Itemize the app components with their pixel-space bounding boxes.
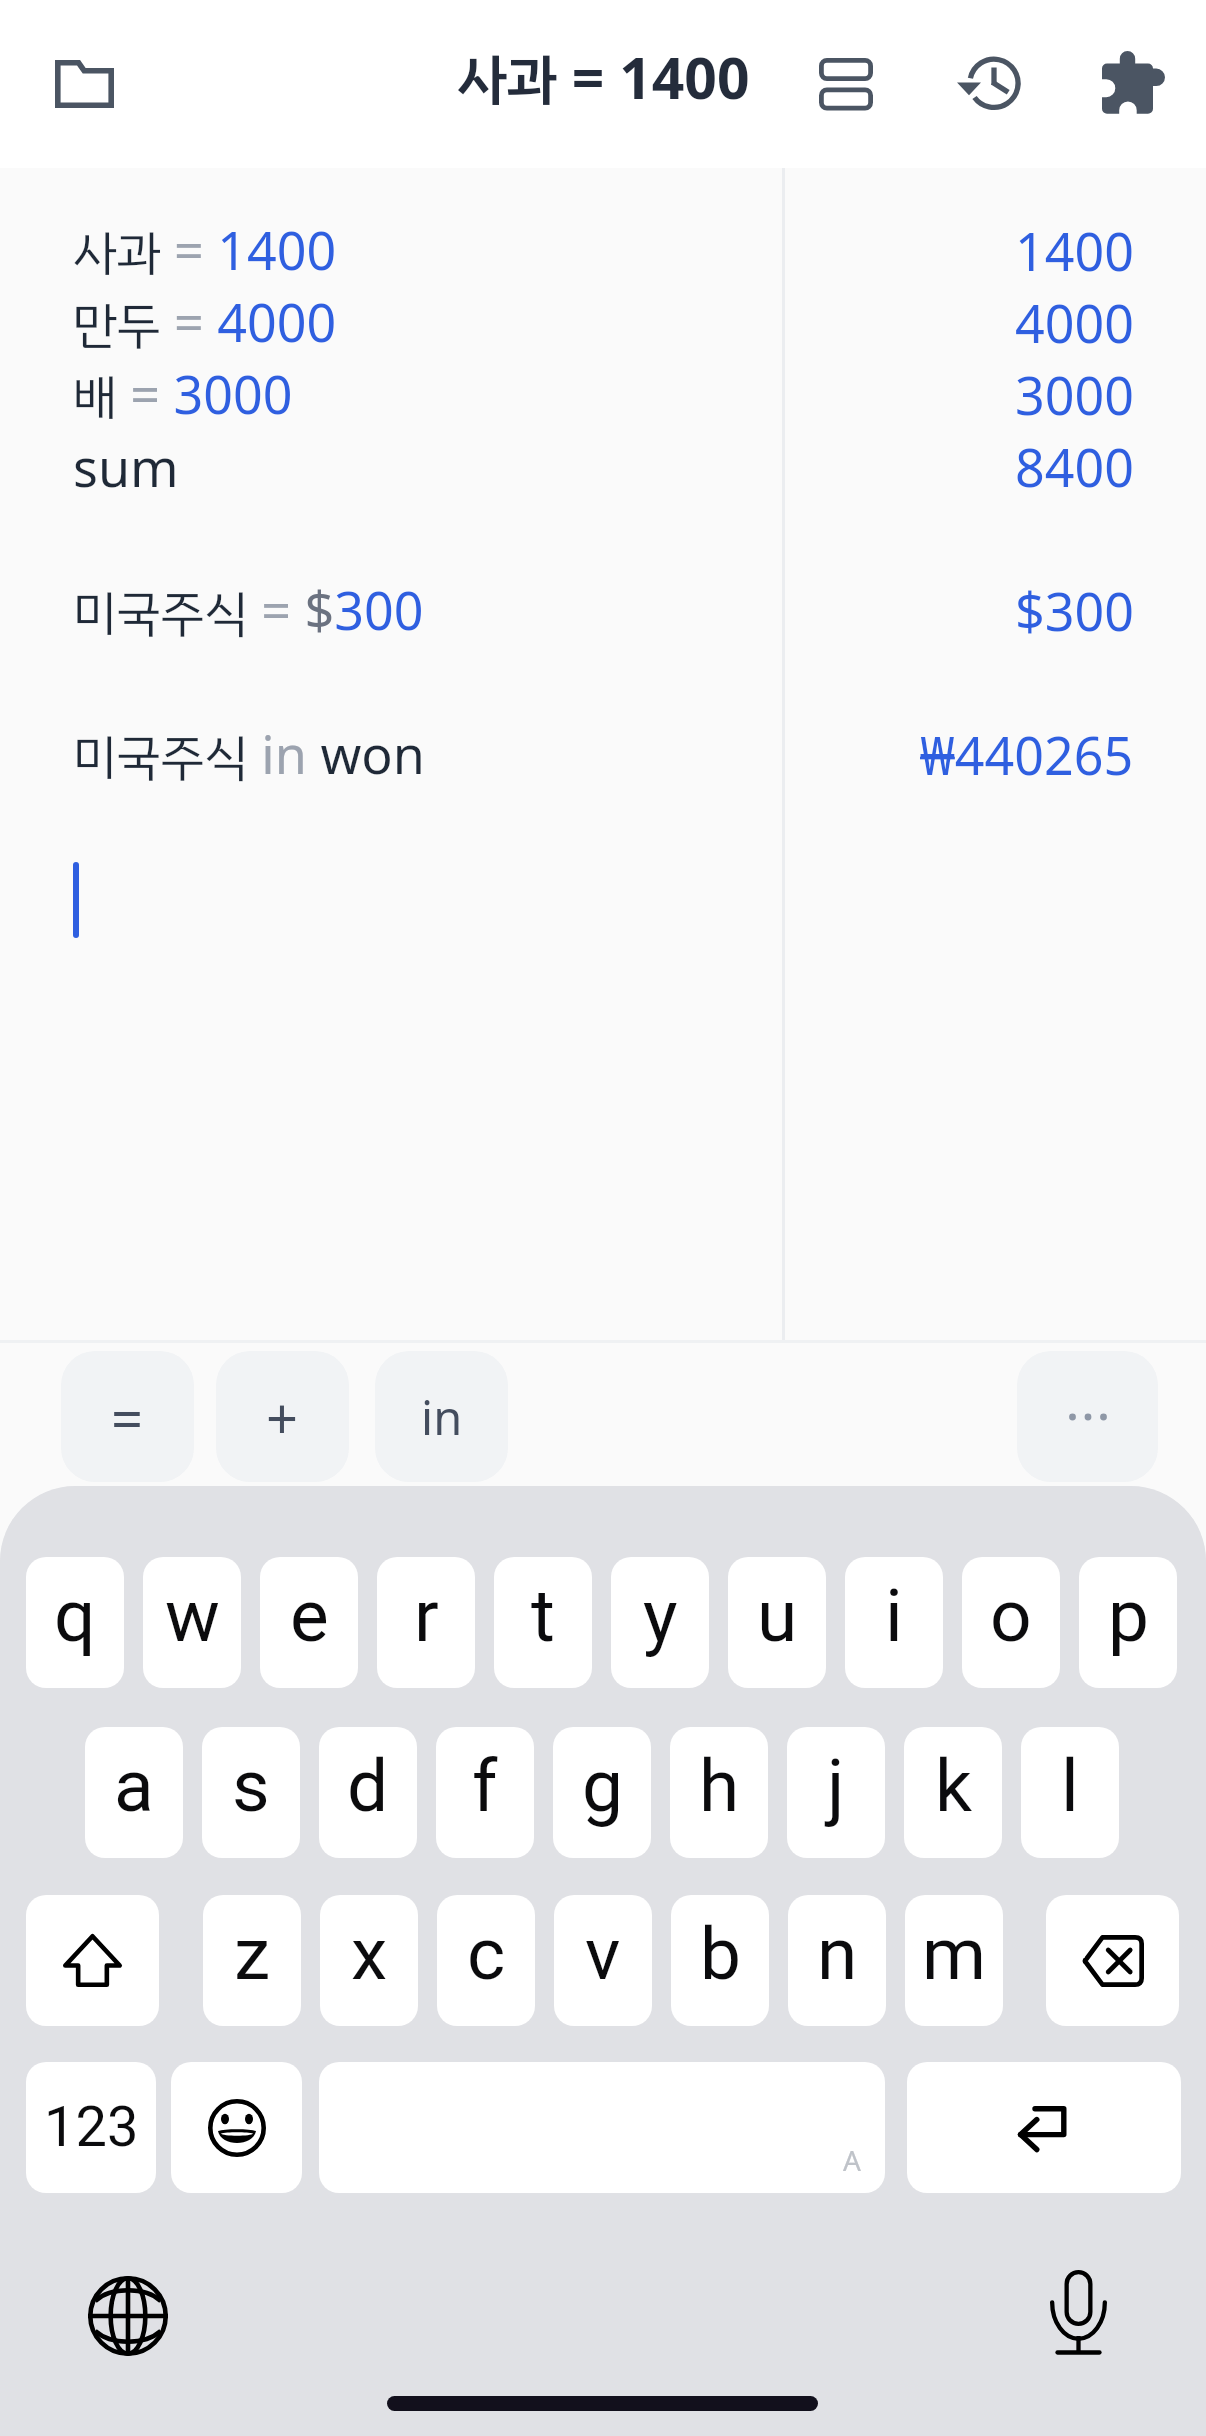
staticText: r xyxy=(414,1573,439,1659)
staticText: y xyxy=(643,1573,678,1659)
button[interactable]: Emoji xyxy=(171,2062,302,2193)
staticText: ₩440265 xyxy=(920,719,1134,790)
staticText: 123 xyxy=(44,2094,139,2160)
button[interactable]: o xyxy=(962,1557,1060,1688)
button[interactable]: = xyxy=(61,1351,194,1482)
staticText: k xyxy=(935,1743,972,1829)
button[interactable]: x xyxy=(320,1895,418,2026)
staticText: 미국주식 = $300 xyxy=(73,574,424,646)
button[interactable]: s xyxy=(202,1727,300,1858)
staticText: w xyxy=(165,1573,220,1659)
staticText: 사과 = 1400 xyxy=(457,38,750,122)
button[interactable]: 123 xyxy=(26,2062,156,2193)
button[interactable]: Extensions xyxy=(1069,18,1197,146)
staticText: 4000 xyxy=(1015,287,1134,358)
staticText: i xyxy=(885,1573,903,1659)
button[interactable] xyxy=(1017,1351,1158,1482)
staticText: sum xyxy=(73,431,179,502)
staticText: a xyxy=(114,1743,154,1829)
staticText: x xyxy=(351,1911,388,1997)
button[interactable]: p xyxy=(1079,1557,1177,1688)
button[interactable]: g xyxy=(553,1727,651,1858)
button[interactable]: Voice input xyxy=(1050,2270,1107,2356)
button[interactable]: Shift xyxy=(26,1895,159,2026)
button[interactable]: Folders xyxy=(20,20,148,148)
button[interactable]: v xyxy=(554,1895,652,2026)
staticText: 사과 = 1400 xyxy=(73,214,337,286)
staticText: n xyxy=(817,1911,858,1997)
button[interactable]: d xyxy=(319,1727,417,1858)
button[interactable]: Split view xyxy=(782,20,910,148)
staticText: z xyxy=(234,1911,271,1997)
staticText: = xyxy=(111,1379,144,1455)
button[interactable]: u xyxy=(728,1557,826,1688)
staticText: 만두 = 4000 xyxy=(73,286,337,358)
button[interactable]: z xyxy=(203,1895,301,2026)
staticText: A xyxy=(843,2141,861,2179)
staticText: 미국주식 in won xyxy=(73,718,425,790)
button[interactable]: i xyxy=(845,1557,943,1688)
staticText: u xyxy=(757,1573,798,1659)
button[interactable]: Change language xyxy=(88,2276,168,2356)
button[interactable]: l xyxy=(1021,1727,1119,1858)
staticText: 배 = 3000 xyxy=(73,358,293,430)
staticText: o xyxy=(990,1573,1032,1659)
staticText: v xyxy=(585,1911,621,1997)
button[interactable]: b xyxy=(671,1895,769,2026)
button[interactable]: h xyxy=(670,1727,768,1858)
staticText: 1400 xyxy=(1015,215,1134,286)
staticText: e xyxy=(290,1573,329,1659)
button[interactable]: t xyxy=(494,1557,592,1688)
staticText: in xyxy=(421,1385,463,1449)
button[interactable]: History xyxy=(925,20,1053,148)
button[interactable]: w xyxy=(143,1557,241,1688)
staticText: l xyxy=(1061,1743,1079,1829)
button[interactable]: m xyxy=(905,1895,1003,2026)
button[interactable]: Backspace xyxy=(1046,1895,1179,2026)
staticText: c xyxy=(467,1911,506,1997)
button[interactable]: y xyxy=(611,1557,709,1688)
button[interactable]: j xyxy=(787,1727,885,1858)
staticText: p xyxy=(1108,1573,1149,1659)
staticText: g xyxy=(582,1743,623,1829)
staticText: b xyxy=(700,1911,741,1997)
staticText: j xyxy=(827,1743,845,1829)
staticText: f xyxy=(472,1743,498,1829)
button[interactable]: r xyxy=(377,1557,475,1688)
button[interactable]: in xyxy=(375,1351,508,1482)
staticText: 8400 xyxy=(1015,431,1134,502)
button[interactable]: n xyxy=(788,1895,886,2026)
button[interactable]: c xyxy=(437,1895,535,2026)
button[interactable]: k xyxy=(904,1727,1002,1858)
button[interactable]: q xyxy=(26,1557,124,1688)
button[interactable]: Space xyxy=(319,2062,885,2193)
staticText: $300 xyxy=(1015,575,1134,646)
button[interactable]: Enter xyxy=(907,2062,1181,2193)
staticText: q xyxy=(54,1573,96,1659)
staticText: h xyxy=(699,1743,740,1829)
staticText: m xyxy=(922,1911,987,1997)
button[interactable]: e xyxy=(260,1557,358,1688)
button[interactable]: a xyxy=(85,1727,183,1858)
staticText: t xyxy=(531,1573,555,1659)
staticText: 3000 xyxy=(1015,359,1134,430)
button[interactable]: + xyxy=(216,1351,349,1482)
staticText: d xyxy=(347,1743,389,1829)
staticText: + xyxy=(266,1379,299,1455)
staticText: s xyxy=(232,1743,270,1829)
button[interactable]: f xyxy=(436,1727,534,1858)
